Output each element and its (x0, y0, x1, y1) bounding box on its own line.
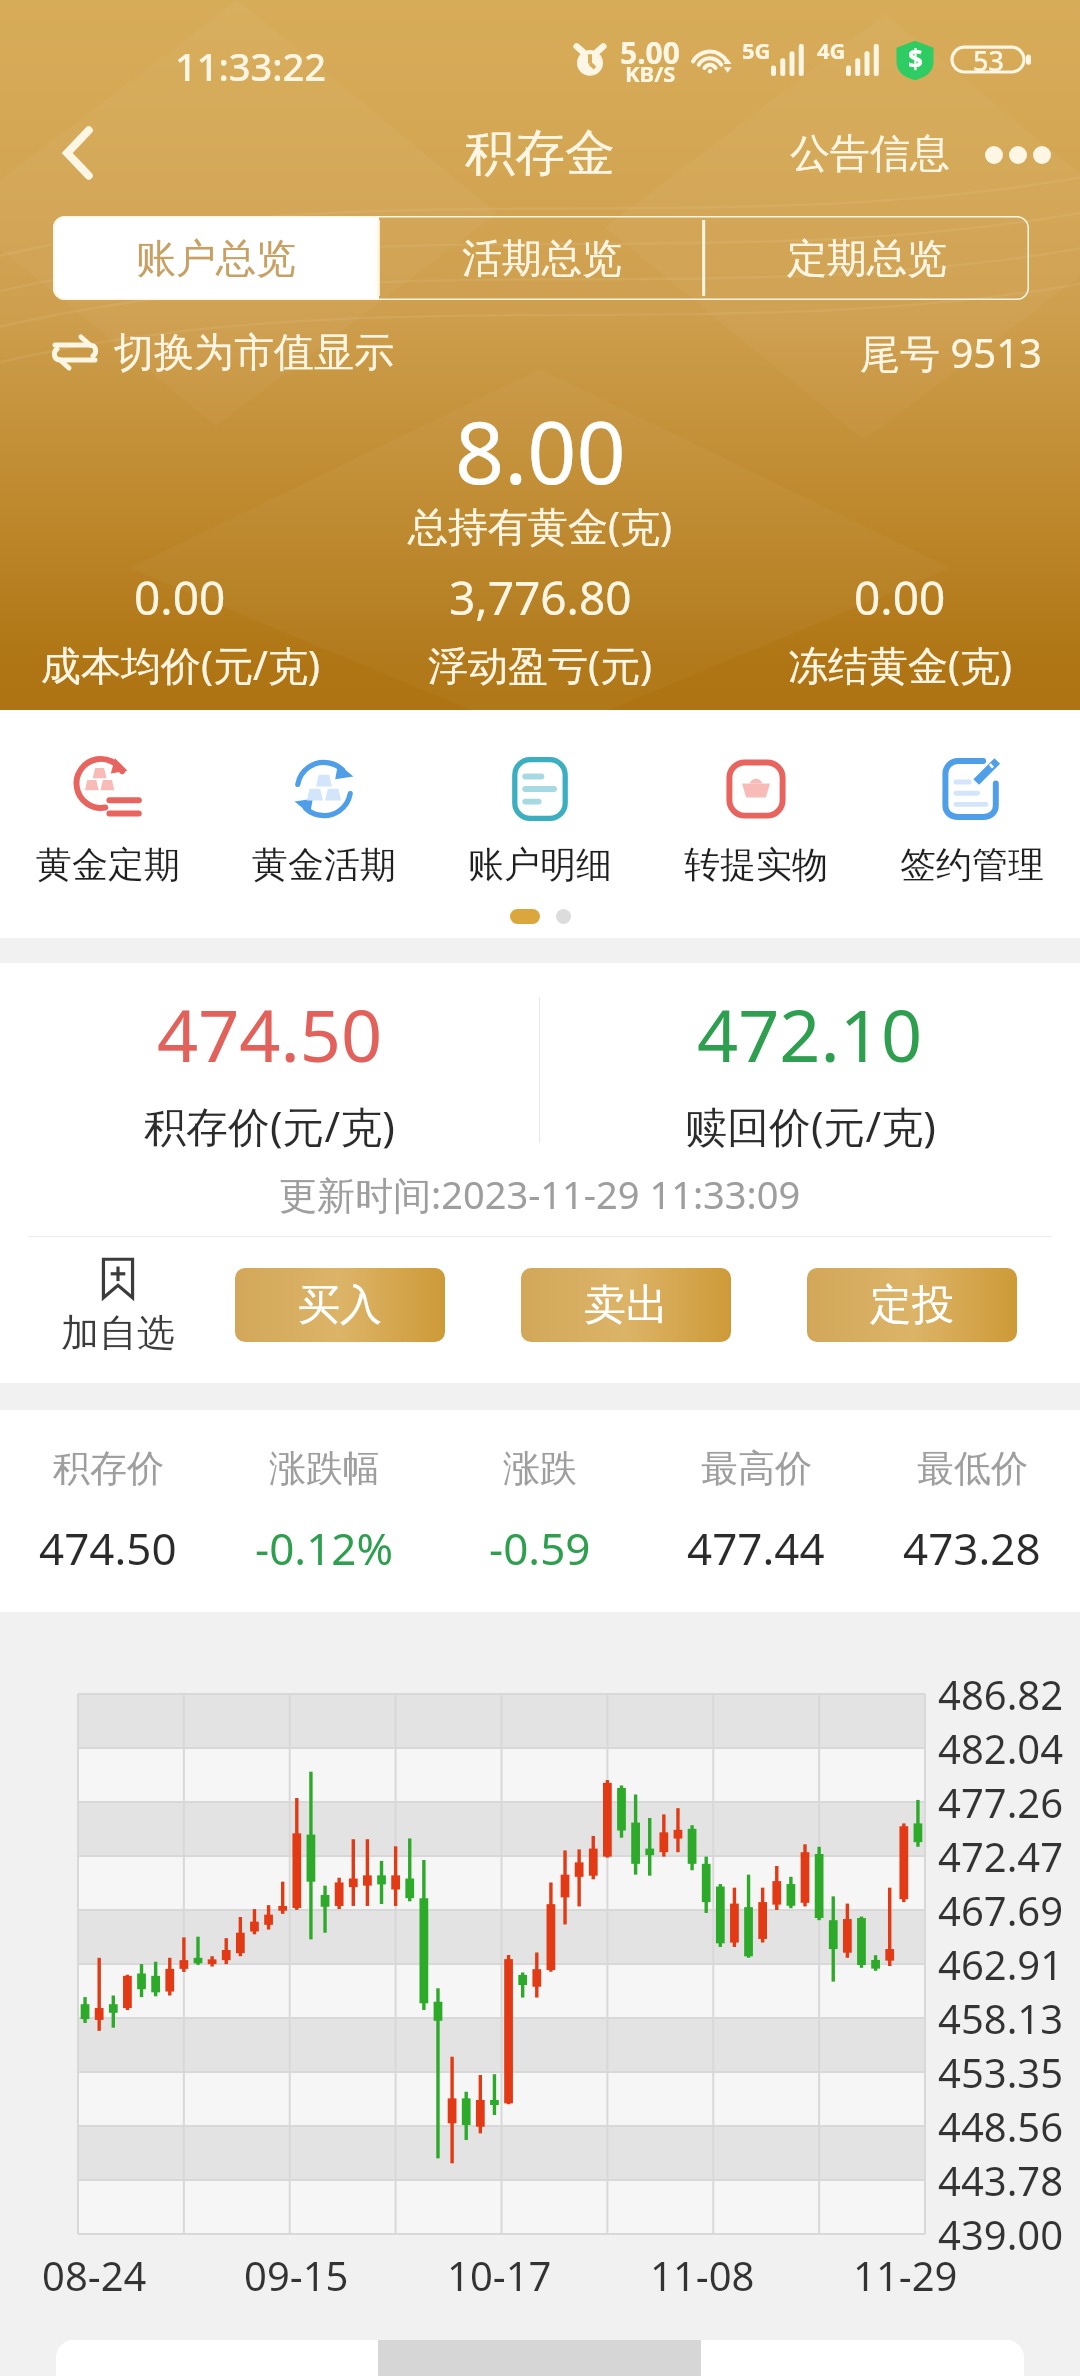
staticText: 5G (742, 35, 771, 65)
staticText: 477.44 (687, 1518, 825, 1578)
staticText: -0.12% (255, 1518, 394, 1578)
staticText: 462.91 (938, 1937, 1064, 1991)
staticText: -0.59 (489, 1518, 591, 1578)
staticText: 0.00 (854, 566, 946, 629)
staticText: 总持有黄金(克) (408, 498, 672, 553)
staticText: 482.04 (938, 1721, 1064, 1775)
staticText: 443.78 (938, 2153, 1064, 2207)
staticText: 活期总览 (462, 233, 622, 283)
button[interactable]: 定期总览 (704, 216, 1029, 300)
staticText: 最高价 (701, 1445, 812, 1492)
staticText: KB/S (625, 58, 676, 88)
staticText: 转提实物 (684, 842, 828, 887)
button[interactable]: 加自选 (0, 1253, 235, 1357)
staticText: 积存金 (465, 122, 615, 185)
staticText: 最低价 (917, 1445, 1028, 1492)
staticText: 11:33:22 (175, 40, 327, 92)
staticText: 尾号 9513 (860, 325, 1042, 380)
staticText: 定期总览 (787, 233, 947, 283)
staticText: 08-24 (42, 2248, 147, 2302)
staticText: 买入 (298, 1279, 382, 1332)
staticText: 09-15 (244, 2248, 349, 2302)
staticText: 账户总览 (136, 233, 296, 283)
button[interactable]: 买入 (235, 1268, 445, 1342)
staticText: 11-08 (650, 2248, 755, 2302)
staticText: 5.00 (620, 32, 680, 73)
staticText: $ (908, 41, 923, 76)
staticText: 涨跌幅 (269, 1445, 380, 1492)
button[interactable]: 签约管理 (864, 754, 1080, 887)
button[interactable]: 定投 (807, 1268, 1017, 1342)
staticText: 10-17 (447, 2248, 552, 2302)
button[interactable]: More options (975, 112, 1061, 198)
button[interactable]: 账户明细 (432, 754, 648, 887)
button[interactable]: 切换为市值显示 (50, 322, 394, 382)
staticText: 11-29 (853, 2248, 958, 2302)
staticText: 477.26 (938, 1775, 1064, 1829)
staticText: 53 (973, 42, 1004, 79)
staticText: 3,776.80 (449, 566, 632, 629)
staticText: 黄金活期 (252, 842, 396, 887)
staticText: 439.00 (938, 2207, 1064, 2261)
staticText: 账户明细 (468, 842, 612, 887)
staticText: 473.28 (903, 1518, 1041, 1578)
staticText: 467.69 (938, 1883, 1064, 1937)
staticText: 黄金定期 (36, 842, 180, 887)
staticText: 472.47 (938, 1829, 1064, 1883)
button[interactable]: 卖出 (521, 1268, 731, 1342)
staticText: 更新时间:2023-11-29 11:33:09 (279, 1168, 801, 1220)
staticText: 成本均价(元/克) (41, 637, 320, 692)
staticText: 472.10 (697, 985, 923, 1083)
staticText: 切换为市值显示 (114, 327, 394, 377)
staticText: 卖出 (584, 1279, 668, 1332)
staticText: 积存价 (53, 1445, 164, 1492)
staticText: 453.35 (938, 2045, 1064, 2099)
staticText: 0.00 (134, 566, 226, 629)
staticText: 积存价(元/克) (144, 1097, 395, 1154)
button[interactable]: Back (30, 105, 126, 201)
staticText: 4G (817, 35, 846, 65)
staticText: 448.56 (938, 2099, 1064, 2153)
staticText: 474.50 (39, 1518, 177, 1578)
staticText: 冻结黄金(克) (788, 637, 1012, 692)
button[interactable]: 黄金定期 (0, 754, 216, 887)
button[interactable]: 账户总览 (53, 216, 379, 300)
staticText: 赎回价(元/克) (685, 1097, 936, 1154)
staticText: 涨跌 (503, 1445, 577, 1492)
staticText: 474.50 (157, 985, 383, 1083)
button[interactable]: 黄金活期 (216, 754, 432, 887)
staticText: 签约管理 (900, 842, 1044, 887)
staticText: 公告信息 (790, 128, 950, 178)
staticText: 458.13 (938, 1991, 1064, 2045)
staticText: 486.82 (938, 1667, 1064, 1721)
staticText: 定投 (870, 1279, 954, 1332)
staticText: 8.00 (455, 392, 626, 509)
button[interactable]: 转提实物 (648, 754, 864, 887)
button[interactable]: 公告信息 (790, 120, 950, 186)
staticText: 加自选 (61, 1309, 175, 1357)
staticText: 浮动盈亏(元) (428, 637, 652, 692)
button[interactable]: 活期总览 (379, 216, 704, 300)
